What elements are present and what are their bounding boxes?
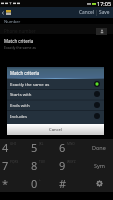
button[interactable]: 6 (57, 139, 85, 156)
staticText: Match criteria (10, 70, 40, 76)
staticText: GHI (10, 142, 16, 146)
staticText: MNO (67, 142, 75, 146)
staticText: + (39, 178, 41, 182)
button[interactable]: # (57, 174, 85, 192)
button[interactable]: Starts with (7, 89, 104, 99)
staticText: PQRS (10, 160, 19, 164)
staticText: JKL (39, 142, 44, 146)
button[interactable]: 0 (29, 174, 57, 192)
button[interactable]: Back (0, 7, 5, 18)
staticText: Exactly the same as (10, 81, 50, 87)
staticText: Starts with (10, 91, 32, 97)
staticText: WXYZ (67, 160, 76, 164)
staticText: Done (92, 144, 106, 151)
staticText: Match criteria (4, 38, 34, 44)
staticText: * (2, 176, 9, 191)
staticText: # (59, 176, 67, 191)
button[interactable]: 5 (29, 139, 57, 156)
button[interactable]: Cancel (7, 124, 104, 135)
staticText: 7 (2, 158, 9, 173)
staticText: 6 (59, 140, 66, 155)
staticText: 9 (59, 158, 66, 173)
staticText: Cancel (49, 127, 63, 133)
staticText: Exactly the same as (4, 45, 37, 50)
button[interactable]: Ends with (7, 99, 104, 110)
button[interactable]: 7 (0, 156, 29, 174)
staticText: Save (99, 9, 110, 16)
staticText: Ends with (10, 102, 30, 108)
staticText: Number (4, 19, 21, 25)
other: Settings (96, 180, 103, 187)
staticText: Includes (10, 113, 28, 119)
button[interactable]: * (0, 174, 29, 192)
staticText: 17:05 (97, 0, 112, 7)
button[interactable]: 4 (0, 139, 29, 156)
button[interactable]: Settings (85, 174, 113, 192)
staticText: Phone number (4, 28, 36, 34)
button[interactable]: Save (97, 7, 112, 18)
button[interactable]: Exactly the same as (7, 79, 104, 89)
button[interactable]: Pick contact (96, 28, 107, 35)
staticText: 0 (31, 176, 38, 191)
staticText: 5 (31, 140, 38, 155)
button[interactable]: 9 (57, 156, 85, 174)
staticText: TUV (39, 160, 46, 164)
staticText: Sym (94, 162, 105, 169)
button[interactable]: Done (85, 139, 113, 156)
button[interactable]: Includes (7, 110, 104, 121)
staticText: 8 (31, 158, 38, 173)
button[interactable]: Match criteria (0, 38, 113, 50)
staticText: Cancel (79, 9, 94, 16)
button[interactable]: 8 (29, 156, 57, 174)
staticText: 4 (2, 140, 9, 155)
button[interactable]: Sym (85, 156, 113, 174)
button[interactable]: Cancel (77, 7, 96, 18)
